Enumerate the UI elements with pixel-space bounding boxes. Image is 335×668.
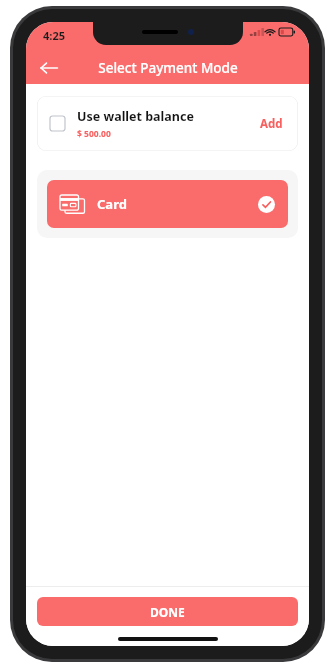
staticText: Card — [97, 195, 127, 213]
button[interactable]: Use wallet balance — [37, 96, 298, 151]
staticText: Select Payment Mode — [98, 59, 238, 77]
staticText: DONE — [150, 604, 185, 620]
staticText: Use wallet balance — [77, 108, 194, 125]
staticText: 4:25 — [43, 28, 65, 43]
button[interactable]: Add — [258, 112, 285, 136]
button[interactable]: Card — [47, 180, 288, 228]
staticText: $ 500.00 — [77, 128, 111, 140]
button[interactable]: DONE — [37, 597, 298, 626]
staticText: Add — [260, 116, 283, 132]
button[interactable]: Back — [32, 52, 66, 84]
